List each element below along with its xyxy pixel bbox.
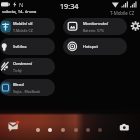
button[interactable]: Oznámení xyxy=(0,58,55,75)
button[interactable]: Mobilní síť xyxy=(0,18,55,35)
button[interactable]: App 1 xyxy=(36,128,40,132)
staticText: N xyxy=(19,1,24,9)
staticText: Monitorování xyxy=(83,21,108,26)
staticText: Blend xyxy=(13,82,24,87)
button[interactable]: App 4 xyxy=(74,128,78,132)
button[interactable]: App 2 xyxy=(48,128,52,132)
staticText: 19:34 xyxy=(60,1,79,11)
button[interactable]: App 6 xyxy=(98,128,102,132)
staticText: Oznámení xyxy=(13,61,32,66)
button[interactable]: Camera xyxy=(119,123,130,132)
staticText: Vojta - MacBook xyxy=(13,89,41,94)
button[interactable]: App 3 xyxy=(61,128,65,132)
staticText: Mobilní síť xyxy=(13,21,33,26)
button[interactable]: Settings xyxy=(130,20,140,32)
staticText: T-Mobile CZ xyxy=(13,28,33,33)
staticText: sobota, 14. února xyxy=(2,9,37,15)
staticText: Hotspot xyxy=(83,44,98,49)
button[interactable]: Hotspot xyxy=(63,38,127,55)
button[interactable]: Blend xyxy=(0,79,55,96)
button[interactable]: Messages xyxy=(7,120,20,133)
button[interactable]: App 5 xyxy=(86,128,90,132)
staticText: Baterie: 57% xyxy=(83,28,105,33)
button[interactable]: Svítilna xyxy=(0,38,55,55)
staticText: T-Mobile CZ xyxy=(110,10,135,16)
staticText: Svítilna xyxy=(13,44,27,49)
button[interactable]: Monitorování xyxy=(63,18,127,35)
staticText: Tichý xyxy=(13,68,22,73)
